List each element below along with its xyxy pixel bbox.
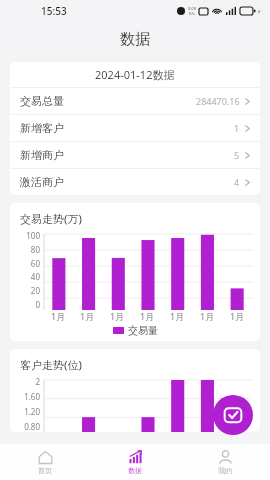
- staticText: 数据: [128, 466, 142, 475]
- staticText: 80: [30, 244, 40, 255]
- staticText: K/s: [189, 11, 195, 16]
- button[interactable]: 新增商户: [10, 141, 260, 168]
- staticText: 4: [234, 176, 240, 188]
- staticText: 40: [30, 271, 40, 282]
- staticText: 0.80: [24, 421, 40, 432]
- staticText: 我的: [218, 466, 232, 475]
- staticText: 新增客户: [20, 121, 64, 135]
- staticText: 2: [35, 376, 40, 387]
- staticText: 2024-01-12数据: [95, 67, 175, 82]
- staticText: 1.60: [24, 391, 40, 402]
- staticText: 1月: [230, 310, 245, 322]
- button[interactable]: 交易总量: [10, 87, 260, 114]
- button[interactable]: 我的: [180, 444, 270, 480]
- staticText: 交易总量: [20, 94, 64, 108]
- staticText: 交易走势(万): [20, 211, 82, 226]
- staticText: 20: [30, 285, 40, 296]
- button[interactable]: 数据: [90, 444, 180, 480]
- staticText: 60: [30, 258, 40, 269]
- staticText: 100: [26, 230, 40, 241]
- staticText: 首页: [38, 466, 52, 475]
- staticText: 15:53: [41, 4, 67, 18]
- staticText: 1.20: [24, 406, 40, 417]
- staticText: 1月: [170, 310, 185, 322]
- staticText: 交易量: [128, 324, 158, 337]
- staticText: 1: [234, 122, 240, 134]
- staticText: 1月: [200, 310, 215, 322]
- staticText: 客户走势(位): [20, 357, 82, 372]
- button[interactable]: 激活商户: [10, 168, 260, 195]
- staticText: 1月: [140, 310, 155, 322]
- button[interactable]: 首页: [0, 444, 90, 480]
- staticText: 284470.16: [196, 95, 240, 107]
- staticText: 新增商户: [20, 148, 64, 162]
- staticText: ⚡: [257, 8, 262, 15]
- staticText: 数据: [120, 30, 150, 49]
- staticText: 0.00: [188, 6, 196, 11]
- staticText: 0: [35, 299, 40, 310]
- button[interactable]: Confirm: [213, 395, 253, 435]
- staticText: 1月: [110, 310, 125, 322]
- staticText: 5: [234, 149, 240, 161]
- button[interactable]: 新增客户: [10, 114, 260, 141]
- staticText: 激活商户: [20, 175, 64, 189]
- staticText: 1月: [51, 310, 66, 322]
- staticText: 1月: [80, 310, 95, 322]
